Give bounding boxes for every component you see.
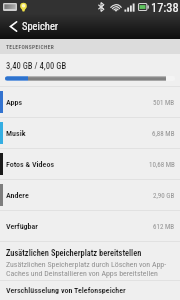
staticText: Zusätzlichen Speicherplatz durch Löschen… (6, 260, 167, 278)
button[interactable]: Fotos & Videos (0, 149, 180, 180)
staticText: Verfügbar (6, 222, 38, 231)
button[interactable]: Verschlüsselung von Telefonspeicher (0, 281, 180, 300)
button[interactable]: Verfügbar (0, 211, 180, 242)
button[interactable]: Zusätzlichen Speicherplatz bereitstellen (0, 242, 180, 281)
staticText: 17:38 (151, 0, 179, 13)
staticText: Verschlüsselung von Telefonspeicher (6, 286, 126, 295)
staticText: 3,40 GB / 4,00 GB (6, 61, 67, 71)
staticText: 2,90 GB (153, 192, 175, 200)
staticText: Musik (6, 129, 26, 138)
button[interactable]: Musik (0, 118, 180, 149)
staticText: Fotos & Videos (6, 160, 55, 169)
staticText: 6,88 MB (152, 130, 175, 138)
staticText: 612 MB (153, 223, 175, 231)
staticText: 501 MB (153, 99, 175, 107)
button[interactable]: Andere (0, 180, 180, 211)
staticText: Speicher (22, 20, 58, 32)
button[interactable]: Apps (0, 87, 180, 118)
button[interactable]: Zurück (0, 13, 26, 39)
staticText: 10,68 MB (149, 161, 175, 169)
staticText: TELEFONSPEICHER (6, 44, 55, 50)
staticText: Andere (6, 191, 29, 200)
staticText: Apps (6, 98, 23, 107)
staticText: Zusätzlichen Speicherplatz bereitstellen (6, 248, 142, 258)
